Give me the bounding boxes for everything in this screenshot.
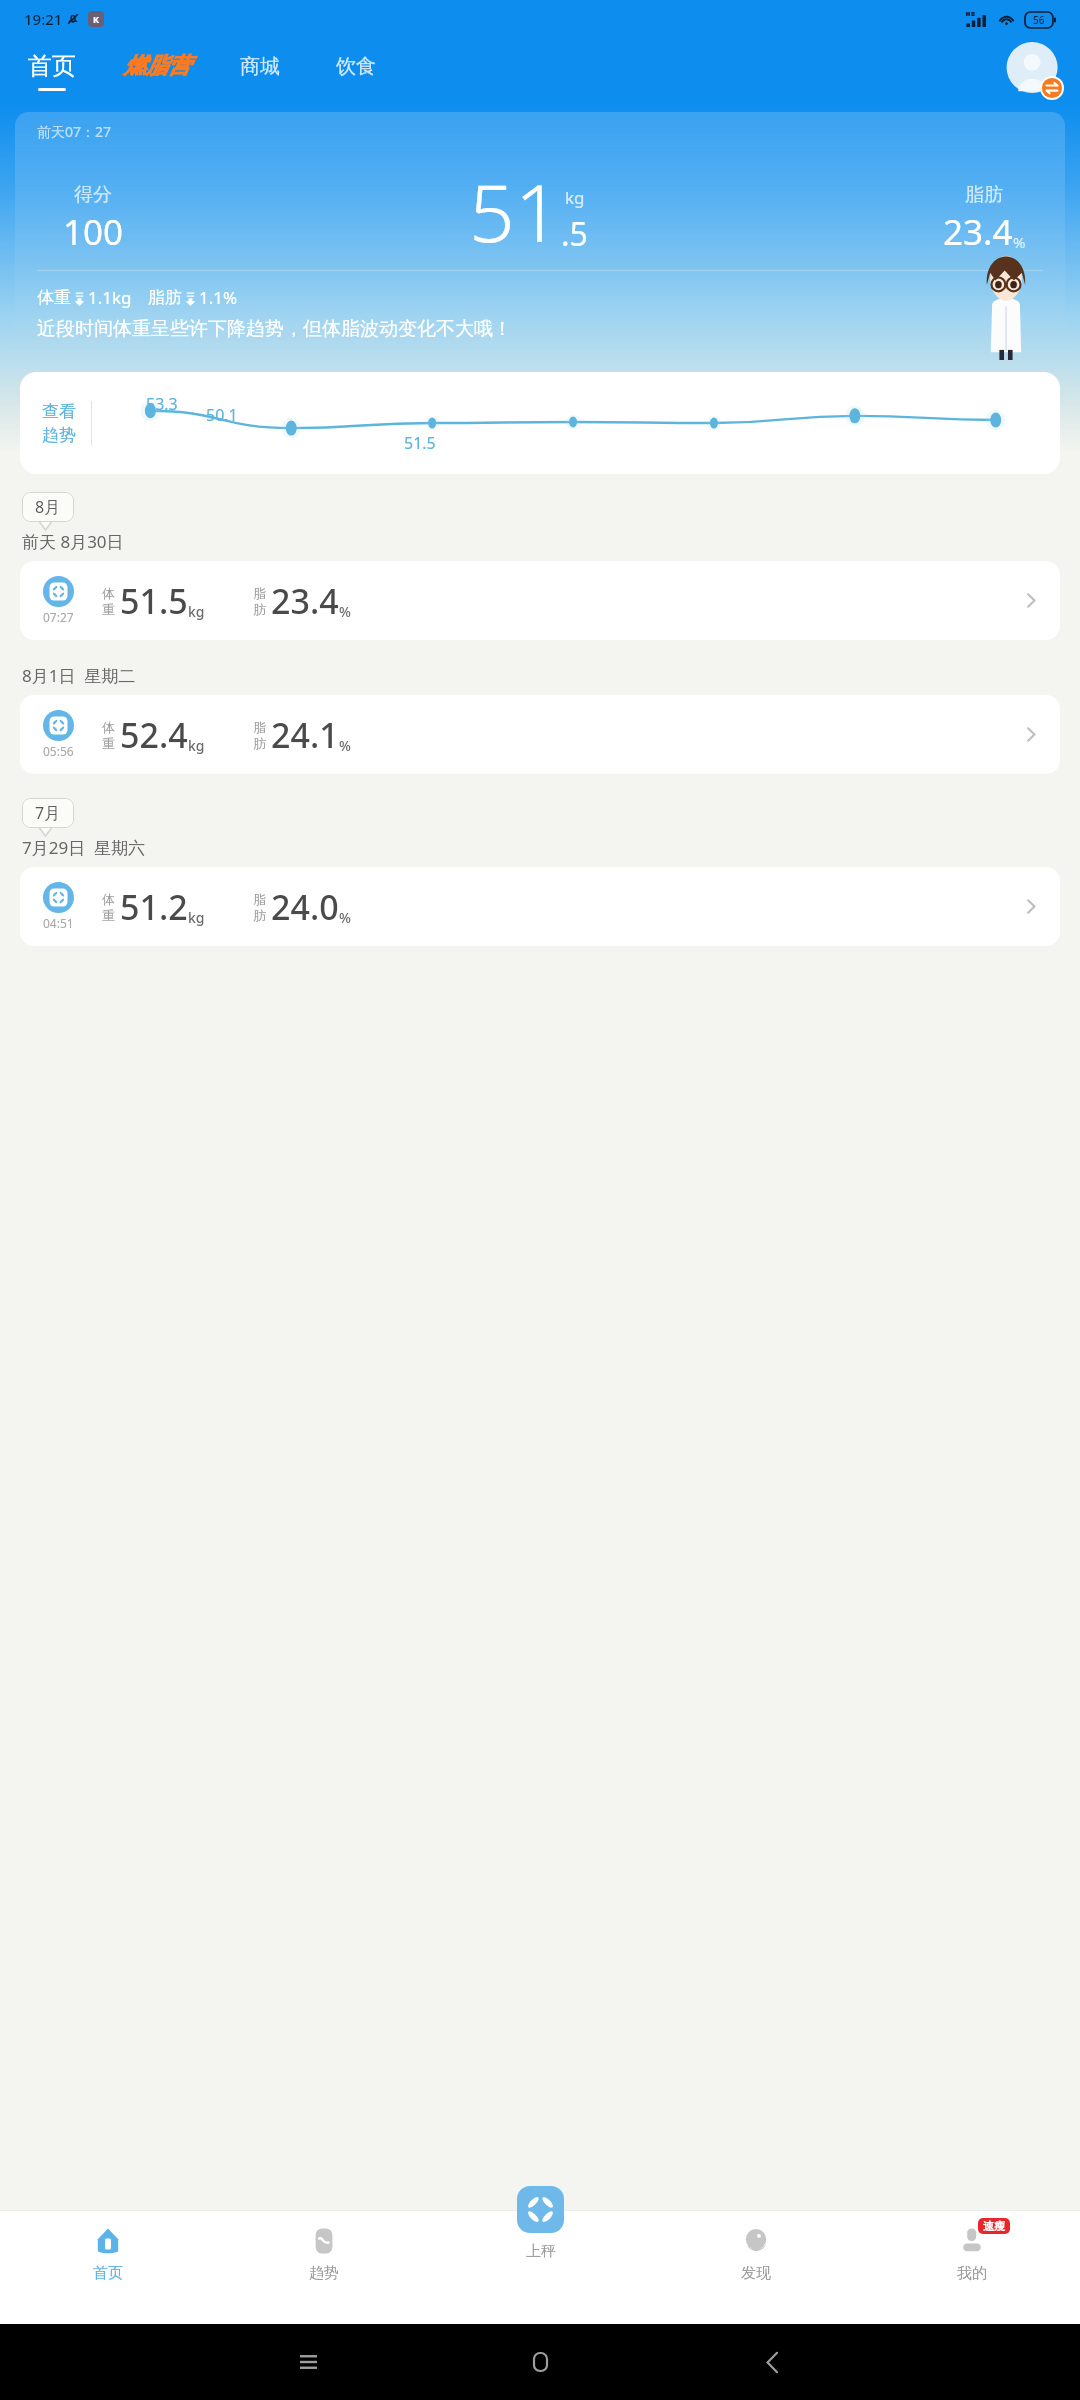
button[interactable]: 首页 bbox=[26, 47, 78, 95]
staticText: 51.5 bbox=[404, 432, 436, 454]
staticText: 上秤 bbox=[526, 2242, 556, 2261]
button[interactable]: 查看 bbox=[20, 372, 1060, 474]
staticText: 我的 bbox=[957, 2264, 987, 2283]
staticText: 商城 bbox=[240, 54, 280, 79]
staticText: 8月1日 星期二 bbox=[22, 664, 136, 687]
staticText: % bbox=[339, 736, 351, 755]
staticText: 07:27 bbox=[43, 609, 74, 625]
staticText: 脂肪 bbox=[965, 183, 1003, 207]
staticText: 燃脂营 bbox=[124, 52, 190, 80]
staticText: 前天07：27 bbox=[37, 122, 112, 141]
button[interactable]: Home bbox=[520, 2342, 560, 2382]
button[interactable]: 饮食 bbox=[330, 53, 382, 90]
staticText: 趋势 bbox=[42, 425, 76, 446]
staticText: 7月 bbox=[35, 802, 61, 824]
staticText: 53.3 bbox=[146, 393, 178, 415]
staticText: 脂 bbox=[253, 719, 266, 735]
button[interactable]: 发现 bbox=[648, 2210, 864, 2324]
button[interactable]: Profile bbox=[1006, 42, 1064, 100]
button[interactable]: 燃脂营 bbox=[118, 51, 196, 91]
staticText: 51.2 bbox=[120, 884, 188, 930]
staticText: 前天 8月30日 bbox=[22, 530, 124, 553]
staticText: 100 bbox=[63, 208, 124, 256]
staticText: 速瘦 bbox=[983, 2219, 1005, 2233]
staticText: 体 bbox=[102, 719, 115, 735]
staticText: kg bbox=[565, 186, 585, 209]
staticText: 50.1 bbox=[206, 404, 238, 426]
staticText: 51 bbox=[469, 156, 561, 265]
staticText: 体 bbox=[102, 891, 115, 907]
staticText: 脂 bbox=[253, 891, 266, 907]
staticText: 饮食 bbox=[336, 54, 376, 79]
staticText: 52.4 bbox=[120, 712, 188, 758]
staticText: 脂肪 bbox=[148, 287, 182, 308]
button[interactable]: Recents bbox=[288, 2342, 328, 2382]
staticText: 重 bbox=[102, 735, 115, 751]
staticText: .5 bbox=[561, 212, 588, 256]
staticText: 51.5 bbox=[120, 578, 188, 624]
button[interactable]: Back bbox=[752, 2342, 792, 2382]
button[interactable]: 7月 bbox=[22, 798, 74, 836]
staticText: K bbox=[93, 13, 99, 25]
staticText: 体 bbox=[102, 585, 115, 601]
button[interactable]: 8月 bbox=[22, 492, 74, 530]
staticText: 1.1kg bbox=[88, 286, 132, 309]
staticText: 体重 bbox=[37, 287, 71, 308]
staticText: 7月29日 星期六 bbox=[22, 836, 146, 859]
staticText: % bbox=[339, 908, 351, 927]
staticText: 56 bbox=[1033, 13, 1045, 27]
button[interactable]: 05:56 bbox=[20, 695, 1060, 774]
staticText: 首页 bbox=[93, 2264, 123, 2283]
staticText: 查看 bbox=[42, 401, 76, 422]
staticText: 24.0 bbox=[271, 884, 339, 930]
staticText: 肪 bbox=[253, 907, 266, 923]
button[interactable]: 上秤 bbox=[503, 2186, 578, 2261]
staticText: kg bbox=[188, 602, 205, 621]
button[interactable]: 趋势 bbox=[216, 2210, 432, 2324]
button[interactable]: 04:51 bbox=[20, 867, 1060, 946]
staticText: 近段时间体重呈些许下降趋势，但体脂波动变化不大哦！ bbox=[37, 317, 565, 341]
staticText: 05:56 bbox=[43, 743, 74, 759]
button[interactable]: 07:27 bbox=[20, 561, 1060, 640]
button[interactable]: 商城 bbox=[234, 53, 286, 90]
staticText: 8月 bbox=[35, 496, 61, 518]
staticText: 肪 bbox=[253, 735, 266, 751]
staticText: 23.4 bbox=[943, 208, 1013, 256]
button[interactable]: 首页 bbox=[0, 2210, 216, 2324]
staticText: 23.4 bbox=[271, 578, 339, 624]
staticText: 24.1 bbox=[271, 712, 339, 758]
staticText: 1.1% bbox=[199, 286, 238, 309]
staticText: 发现 bbox=[741, 2264, 771, 2283]
staticText: % bbox=[1013, 232, 1026, 252]
staticText: kg bbox=[188, 736, 205, 755]
staticText: 首页 bbox=[28, 51, 76, 81]
staticText: 重 bbox=[102, 907, 115, 923]
button[interactable]: 我的 bbox=[864, 2210, 1080, 2324]
staticText: 19:21 bbox=[24, 9, 63, 29]
staticText: kg bbox=[188, 908, 205, 927]
staticText: 脂 bbox=[253, 585, 266, 601]
staticText: 趋势 bbox=[309, 2264, 339, 2283]
staticText: 得分 bbox=[74, 183, 112, 207]
button[interactable]: 前天07：27 bbox=[15, 112, 1065, 362]
staticText: 04:51 bbox=[43, 915, 74, 931]
staticText: 肪 bbox=[253, 601, 266, 617]
staticText: 重 bbox=[102, 601, 115, 617]
staticText: % bbox=[339, 602, 351, 621]
